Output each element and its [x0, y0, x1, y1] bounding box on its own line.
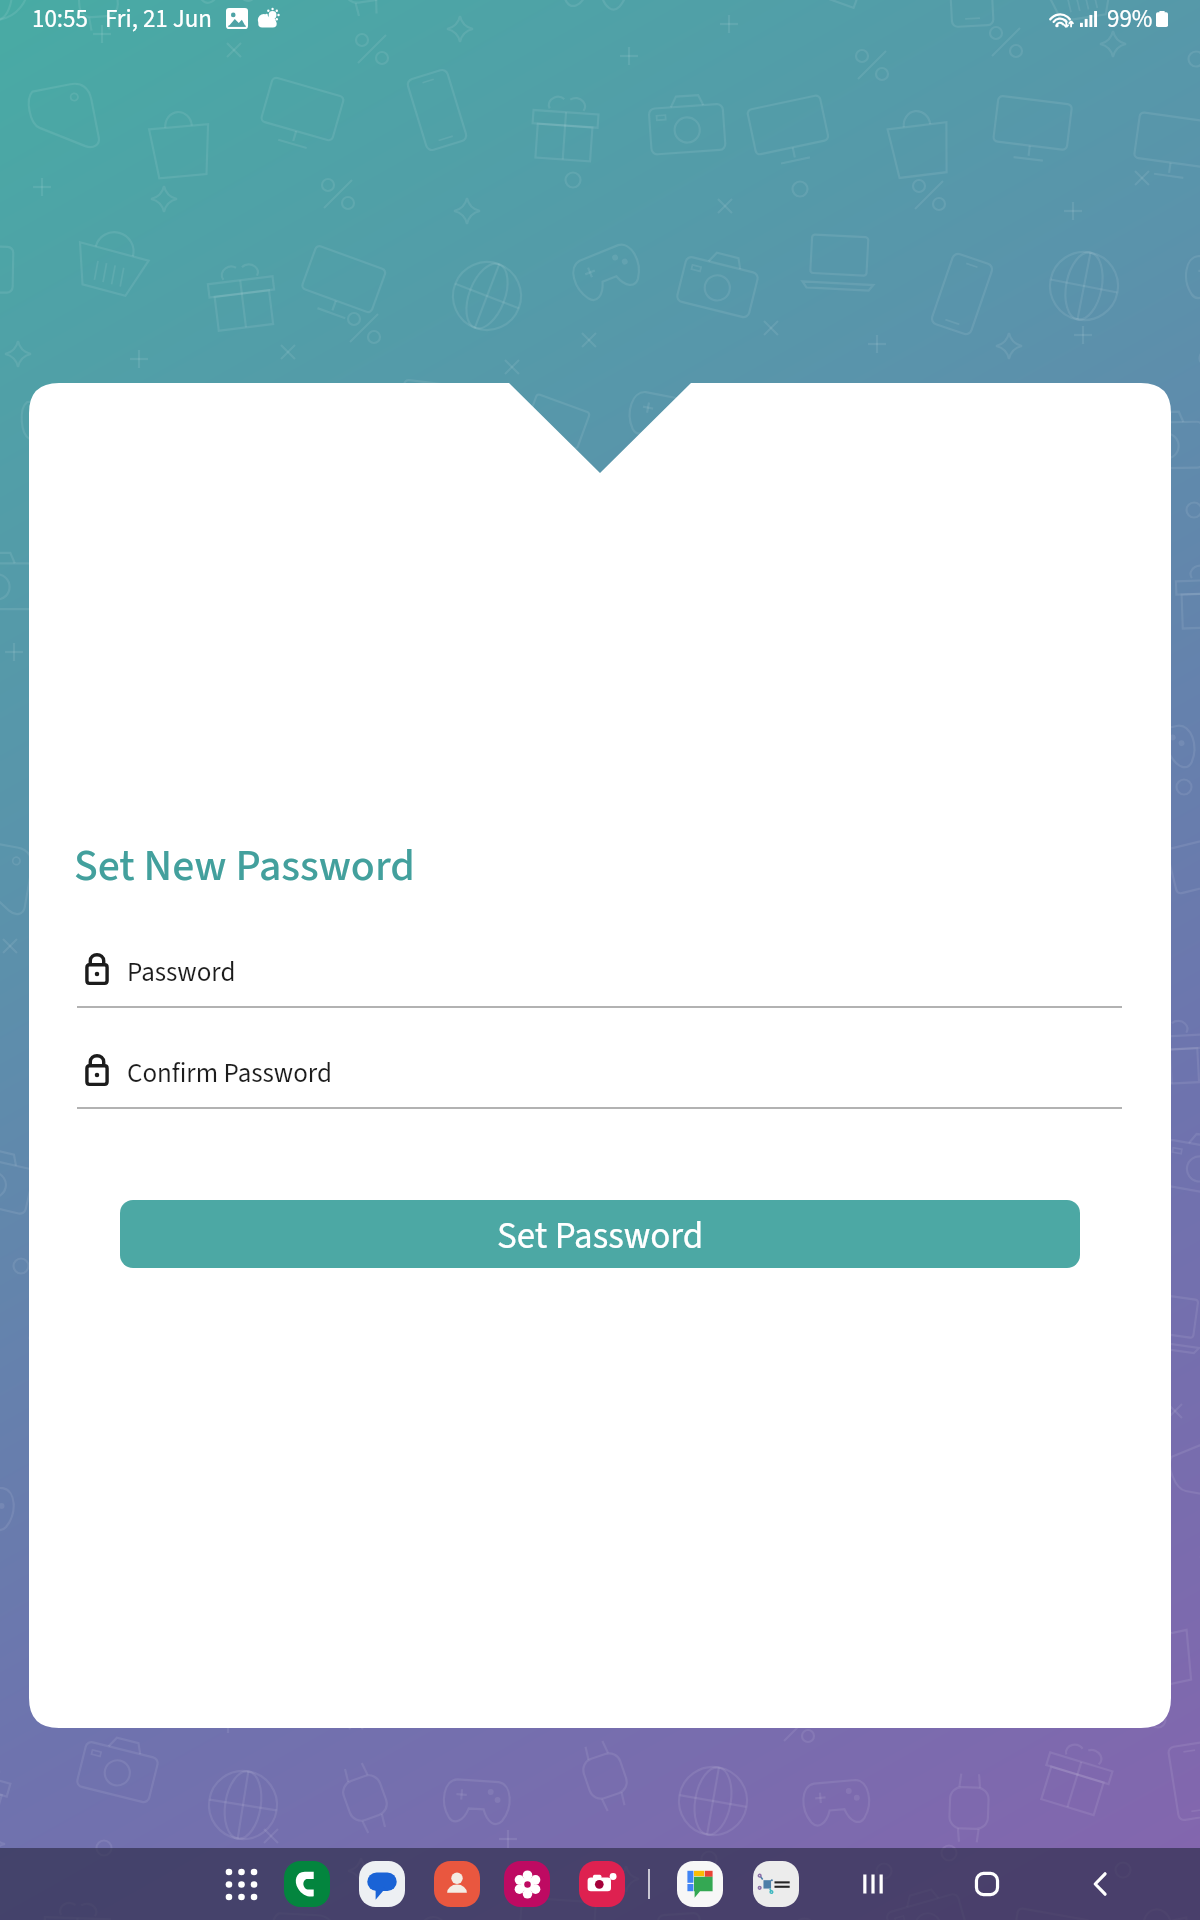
button[interactable]: Back	[1074, 1857, 1128, 1911]
button[interactable]: Camera	[579, 1861, 625, 1907]
button[interactable]: Confirm Password	[77, 1043, 1122, 1109]
staticText: Set New Password	[74, 835, 415, 898]
button[interactable]: Phone	[284, 1861, 330, 1907]
button[interactable]: Messages	[359, 1861, 405, 1907]
button[interactable]: All apps	[218, 1861, 264, 1907]
button[interactable]: Home	[960, 1857, 1014, 1911]
staticText: 10:55	[32, 1, 88, 37]
button[interactable]: Gallery	[504, 1861, 550, 1907]
button[interactable]: Google Chat	[677, 1861, 723, 1907]
staticText: Password	[127, 953, 236, 991]
staticText: Confirm Password	[127, 1054, 332, 1092]
staticText: 99%	[1107, 1, 1153, 37]
button[interactable]: Set Password	[120, 1200, 1080, 1268]
button[interactable]: Recent apps	[846, 1857, 900, 1911]
staticText: Fri, 21 Jun	[105, 1, 213, 37]
staticText: Set Password	[497, 1210, 704, 1263]
button[interactable]: Password	[77, 942, 1122, 1008]
button[interactable]: Traders Connect	[753, 1861, 799, 1907]
button[interactable]: Contacts	[434, 1861, 480, 1907]
